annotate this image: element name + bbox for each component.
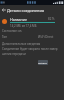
staticText: 14,2 МБ из 17,4 МБ <box>10 24 37 28</box>
staticText: ОТМЕНА <box>38 61 48 64</box>
staticText: Состояние: ок <box>2 29 22 33</box>
staticText: 82 % <box>48 17 55 21</box>
staticText: шения передачи <box>2 52 26 56</box>
button[interactable]: Back <box>0 6 7 13</box>
button[interactable]: ОТМЕНА <box>38 60 48 65</box>
staticText: Тип <box>2 35 8 39</box>
staticText: Детали соединения <box>7 8 45 13</box>
staticText: Wi-Fi Direct <box>38 35 54 39</box>
staticText: Дополнительные сведения <box>2 42 41 46</box>
staticText: Название <box>10 17 27 22</box>
staticText: Соединение будет закрыто после завер <box>2 47 58 51</box>
